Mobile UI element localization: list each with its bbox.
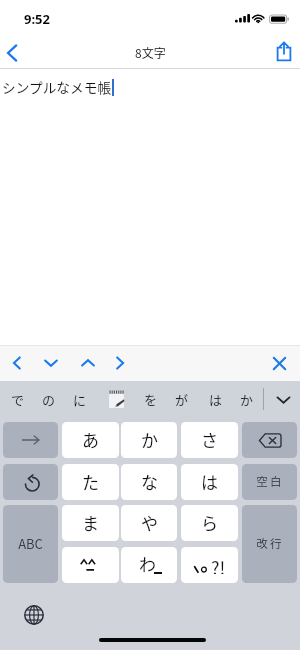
button[interactable]: Next field	[34, 345, 68, 381]
staticText: は	[201, 469, 218, 494]
staticText: か	[240, 390, 254, 409]
staticText: 空白	[256, 473, 284, 490]
staticText: の	[42, 390, 56, 409]
button[interactable]: た	[62, 464, 119, 500]
button[interactable]: ?!	[181, 547, 238, 583]
button[interactable]: か	[231, 381, 262, 417]
staticText: は	[209, 390, 223, 409]
button[interactable]: を	[135, 381, 166, 417]
staticText: ら	[201, 510, 218, 535]
staticText: わ	[139, 551, 156, 576]
button[interactable]: 改行	[242, 505, 297, 583]
button[interactable]: ま	[62, 505, 119, 541]
staticText: あ	[82, 427, 99, 452]
button[interactable]	[242, 422, 297, 458]
staticText: に	[73, 390, 87, 409]
button[interactable]: Previous field	[71, 345, 105, 381]
staticText: か	[141, 427, 158, 452]
button[interactable]: Next	[103, 345, 137, 381]
button[interactable]: が	[166, 381, 197, 417]
staticText: ま	[82, 510, 99, 535]
button[interactable]: ら	[181, 505, 238, 541]
button[interactable]	[3, 464, 58, 500]
staticText: で	[11, 390, 25, 409]
button[interactable]: Share	[270, 37, 300, 68]
staticText: 8文字	[135, 44, 166, 61]
staticText: を	[144, 390, 158, 409]
button[interactable]: Previous	[0, 345, 34, 381]
button[interactable]: は	[181, 464, 238, 500]
button[interactable]: は	[200, 381, 231, 417]
button[interactable]: の	[33, 381, 64, 417]
staticText: や	[141, 510, 158, 535]
button[interactable]	[3, 422, 58, 458]
staticText: 改行	[256, 535, 284, 552]
staticText: ?!	[211, 554, 226, 574]
staticText: ABC	[18, 534, 43, 553]
button[interactable]: あ	[62, 422, 119, 458]
staticText: が	[175, 390, 189, 409]
button[interactable]: わ	[121, 547, 177, 583]
button[interactable]: Back	[0, 37, 32, 68]
button[interactable]: さ	[181, 422, 238, 458]
button[interactable]: に	[64, 381, 95, 417]
button[interactable]: 空白	[242, 464, 297, 500]
button[interactable]	[101, 381, 132, 417]
button[interactable]: ABC	[3, 505, 58, 583]
staticText: さ	[201, 427, 218, 452]
staticText: シンプルなメモ帳	[2, 77, 112, 97]
button[interactable]: な	[121, 464, 177, 500]
staticText: 9:52	[24, 10, 50, 28]
button[interactable]: か	[121, 422, 177, 458]
button[interactable]: Change keyboard	[14, 595, 54, 635]
button[interactable]: や	[121, 505, 177, 541]
staticText: な	[141, 469, 158, 494]
staticText: た	[82, 469, 99, 494]
button[interactable]: Close keyboard	[261, 345, 297, 381]
button[interactable]: Expand suggestions	[266, 381, 300, 417]
button[interactable]: で	[2, 381, 33, 417]
button[interactable]	[62, 547, 119, 583]
